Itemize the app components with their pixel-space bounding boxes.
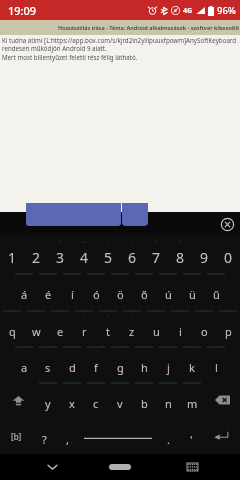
staticText: 7 <box>152 248 161 267</box>
button[interactable]: ¨ <box>180 382 204 418</box>
staticText: 4G <box>183 6 193 16</box>
staticText: i <box>179 324 182 339</box>
staticText: ⊕ <box>154 239 158 244</box>
button[interactable]: ö <box>108 273 132 310</box>
staticText: h <box>141 360 148 375</box>
staticText: ú <box>165 287 172 302</box>
button[interactable]: \\ <box>48 236 72 273</box>
button[interactable]: + <box>24 310 48 346</box>
staticText: ¤¤ <box>82 239 87 244</box>
button[interactable]: ¬ <box>24 236 48 273</box>
button[interactable]: á <box>12 273 36 310</box>
staticText: 4 <box>80 248 89 267</box>
staticText: rendesen működjön Android 9 alatt. <box>2 44 107 52</box>
button[interactable] <box>122 203 148 226</box>
button[interactable]: ~ <box>36 346 60 382</box>
staticText: 5 <box>104 248 113 267</box>
staticText: e <box>57 324 64 339</box>
staticText: é <box>45 287 52 302</box>
button[interactable]: ( <box>180 346 204 382</box>
button[interactable]: – <box>156 382 180 418</box>
staticText: •• <box>106 239 110 244</box>
staticText: ű <box>213 287 220 302</box>
button[interactable]: Enter <box>203 418 240 454</box>
button[interactable]: – <box>156 346 180 382</box>
button[interactable]: Shift <box>0 382 36 418</box>
button[interactable]: b <box>132 382 156 418</box>
button[interactable]: ~ <box>0 236 24 273</box>
button[interactable]: \ <box>0 310 24 346</box>
button[interactable]: ) <box>204 346 228 382</box>
button[interactable]: ~ <box>216 236 240 273</box>
staticText: t <box>106 324 110 339</box>
staticText: + <box>35 313 38 318</box>
button[interactable]: . <box>157 418 180 454</box>
staticText: ) <box>215 349 217 354</box>
button[interactable]: Space <box>79 418 157 454</box>
button[interactable]: ? <box>33 418 56 454</box>
button[interactable]: ű <box>204 273 228 310</box>
button[interactable]: ó <box>84 273 108 310</box>
button[interactable]: Switch keyboard <box>182 457 202 477</box>
button[interactable]: ⊕ <box>144 236 168 273</box>
staticText: Mert most billentyűzet feletti rész féli… <box>2 53 138 61</box>
button[interactable]: í <box>60 273 84 310</box>
button[interactable]: •• <box>120 236 144 273</box>
button[interactable]: ¤¤ <box>72 236 96 273</box>
button[interactable]: – <box>144 310 168 346</box>
button[interactable]: 1 <box>72 310 96 346</box>
staticText: f <box>94 360 98 375</box>
button[interactable]: ° <box>60 382 84 418</box>
staticText: 2 <box>32 248 41 267</box>
button[interactable]: |¥ <box>168 236 192 273</box>
button[interactable]: ! <box>168 310 192 346</box>
staticText: 6 <box>128 248 137 267</box>
staticText: g <box>117 360 124 375</box>
button[interactable]: c <box>84 382 108 418</box>
button[interactable]: ~ <box>192 310 216 346</box>
staticText: 19:09 <box>8 3 37 18</box>
button[interactable]: Home <box>109 464 131 470</box>
button[interactable]: v <box>108 382 132 418</box>
button[interactable]: 3 <box>120 310 144 346</box>
staticText: 3 <box>131 313 134 318</box>
button[interactable]: •• <box>96 236 120 273</box>
button[interactable]: Backspace <box>204 382 240 418</box>
button[interactable]: ^ <box>60 346 84 382</box>
staticText: ( <box>191 349 193 354</box>
staticText: y <box>45 396 51 411</box>
button[interactable] <box>26 203 121 226</box>
staticText: 4 <box>95 349 98 354</box>
button[interactable]: – <box>36 382 60 418</box>
button[interactable]: ' <box>180 418 203 454</box>
staticText: 96% <box>217 4 236 17</box>
button[interactable]: 2 <box>96 310 120 346</box>
button[interactable]: ő <box>132 273 156 310</box>
button[interactable]: ‹ <box>192 236 216 273</box>
button[interactable]: [b] <box>0 418 33 454</box>
button[interactable]: « <box>48 310 72 346</box>
staticText: \\ <box>59 239 62 244</box>
staticText: ö <box>117 287 124 302</box>
button[interactable]: « <box>12 346 36 382</box>
button[interactable]: 5 <box>108 346 132 382</box>
staticText: j <box>167 360 170 375</box>
button[interactable]: Close <box>221 218 234 231</box>
staticText: p <box>225 324 232 339</box>
staticText: v <box>117 396 123 411</box>
button[interactable]: é <box>36 273 60 310</box>
button[interactable]: ü <box>180 273 204 310</box>
button[interactable]: 6 <box>132 346 156 382</box>
button[interactable]: ú <box>156 273 180 310</box>
staticText: o <box>201 324 208 339</box>
button[interactable]: ´ <box>216 310 240 346</box>
button[interactable]: , <box>56 418 79 454</box>
button[interactable]: 4 <box>84 346 108 382</box>
staticText: s <box>45 360 51 375</box>
button[interactable]: Hide keyboard <box>42 457 62 477</box>
